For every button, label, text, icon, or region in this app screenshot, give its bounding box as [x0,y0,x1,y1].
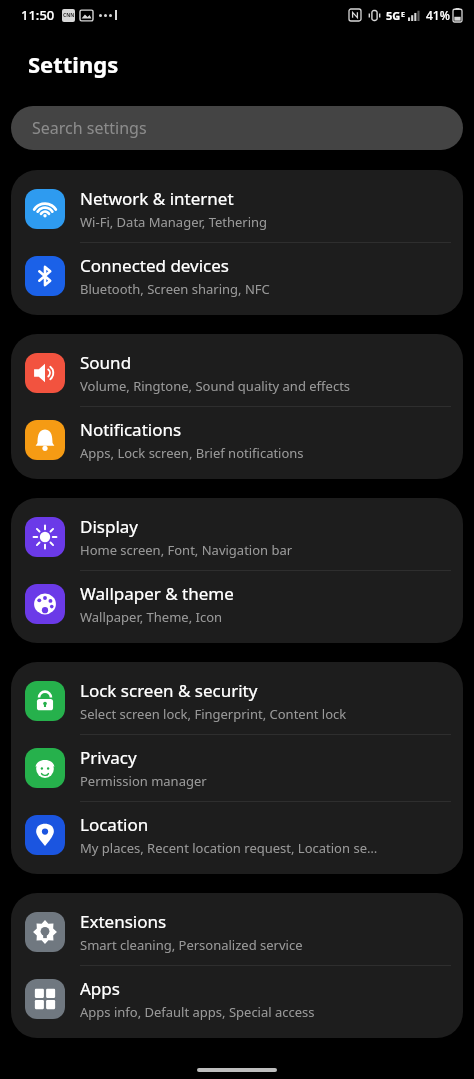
button[interactable]: Privacy [11,735,463,801]
staticText: Wallpaper, Theme, Icon [80,608,223,626]
staticText: Smart cleaning, Personalized service [80,936,303,954]
button[interactable]: Lock screen & security [11,668,463,734]
staticText: Search settings [32,117,147,139]
staticText: Notifications [80,418,182,441]
staticText: Display [80,515,138,538]
staticText: Apps, Lock screen, Brief notifications [80,444,304,462]
button[interactable]: Location [11,802,463,868]
staticText: 5G [386,8,401,23]
staticText: CNN [63,12,75,19]
staticText: Connected devices [80,254,230,277]
button[interactable]: Network & internet [11,176,463,242]
button[interactable]: Apps [11,966,463,1032]
staticText: Privacy [80,746,137,769]
button[interactable]: Connected devices [11,243,463,309]
staticText: 11:50 [21,6,55,24]
staticText: Home screen, Font, Navigation bar [80,541,293,559]
staticText: Settings [28,49,119,79]
button[interactable]: Search settings [11,106,463,150]
staticText: 41% [426,7,450,23]
staticText: Location [80,813,149,836]
staticText: Select screen lock, Fingerprint, Content… [80,705,347,723]
staticText: Wallpaper & theme [80,582,234,605]
staticText: Permission manager [80,772,207,790]
staticText: Bluetooth, Screen sharing, NFC [80,280,270,298]
staticText: E [401,10,405,20]
staticText: Wi-Fi, Data Manager, Tethering [80,213,268,231]
button[interactable]: Sound [11,340,463,406]
staticText: Apps [80,977,120,1000]
staticText: Apps info, Default apps, Special access [80,1003,315,1021]
staticText: Network & internet [80,187,234,210]
button[interactable]: Notifications [11,407,463,473]
staticText: Extensions [80,910,167,933]
button[interactable]: Extensions [11,899,463,965]
button[interactable]: Wallpaper & theme [11,571,463,637]
staticText: My places, Recent location request, Loca… [80,839,378,857]
staticText: Sound [80,351,132,374]
button[interactable]: Display [11,504,463,570]
staticText: Lock screen & security [80,679,258,702]
staticText: Volume, Ringtone, Sound quality and effe… [80,377,351,395]
